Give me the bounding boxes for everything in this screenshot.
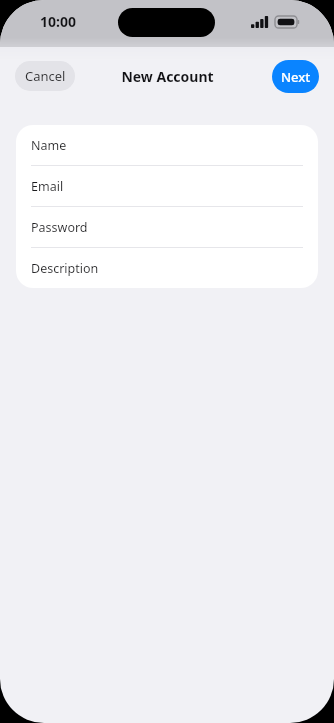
staticText: 10:00 — [40, 12, 76, 31]
button[interactable]: Description — [16, 248, 318, 288]
button[interactable]: Password — [16, 207, 318, 247]
staticText: Next — [281, 68, 311, 86]
button[interactable]: Name — [16, 125, 318, 165]
staticText: Email — [31, 178, 64, 195]
button[interactable]: Cancel — [15, 61, 75, 91]
staticText: Name — [31, 137, 67, 154]
button[interactable]: Email — [16, 166, 318, 206]
button[interactable]: Next — [272, 60, 319, 93]
staticText: Description — [31, 260, 99, 277]
staticText: Cancel — [25, 67, 66, 85]
staticText: New Account — [121, 67, 214, 86]
staticText: Password — [31, 219, 88, 236]
